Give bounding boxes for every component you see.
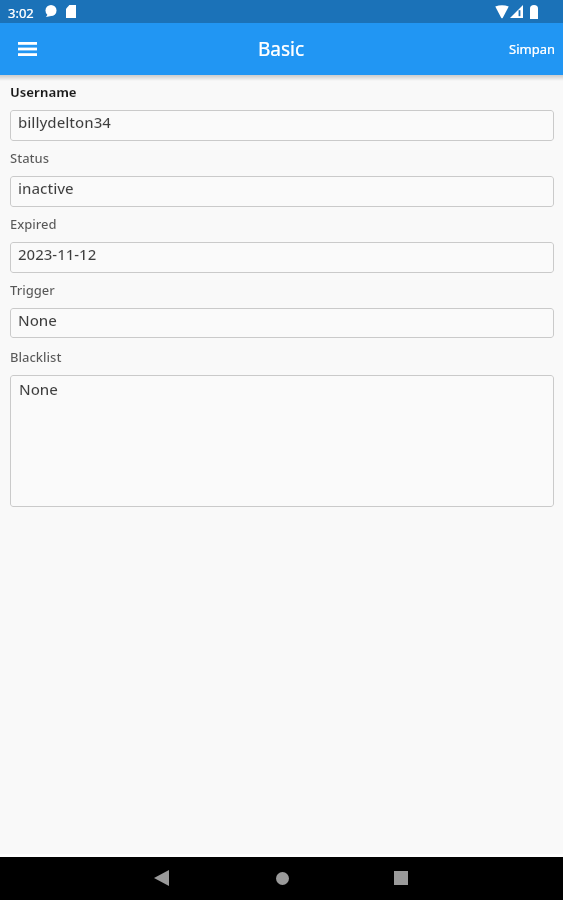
staticText: Simpan (509, 40, 555, 58)
staticText: Status (10, 149, 50, 167)
button[interactable]: Recent apps (384, 861, 418, 895)
button[interactable]: Back (144, 861, 178, 895)
button[interactable]: Home (265, 861, 299, 895)
staticText: Blacklist (10, 348, 62, 366)
button[interactable]: Simpan (501, 28, 563, 70)
button[interactable]: None (10, 375, 554, 507)
staticText: 3:02 (8, 4, 34, 22)
button[interactable]: 2023-11-12 (10, 242, 554, 273)
staticText: inactive (18, 178, 74, 198)
staticText: Username (10, 83, 77, 101)
button[interactable]: inactive (10, 176, 554, 207)
button[interactable]: billydelton34 (10, 110, 554, 141)
staticText: Expired (10, 215, 57, 233)
button[interactable]: None (10, 308, 554, 338)
staticText: Trigger (10, 281, 55, 299)
staticText: 2023-11-12 (18, 244, 97, 264)
button[interactable]: Open navigation menu (3, 25, 51, 73)
staticText: billydelton34 (18, 112, 111, 132)
staticText: Basic (258, 36, 305, 62)
staticText: None (19, 379, 58, 399)
staticText: None (18, 310, 57, 330)
